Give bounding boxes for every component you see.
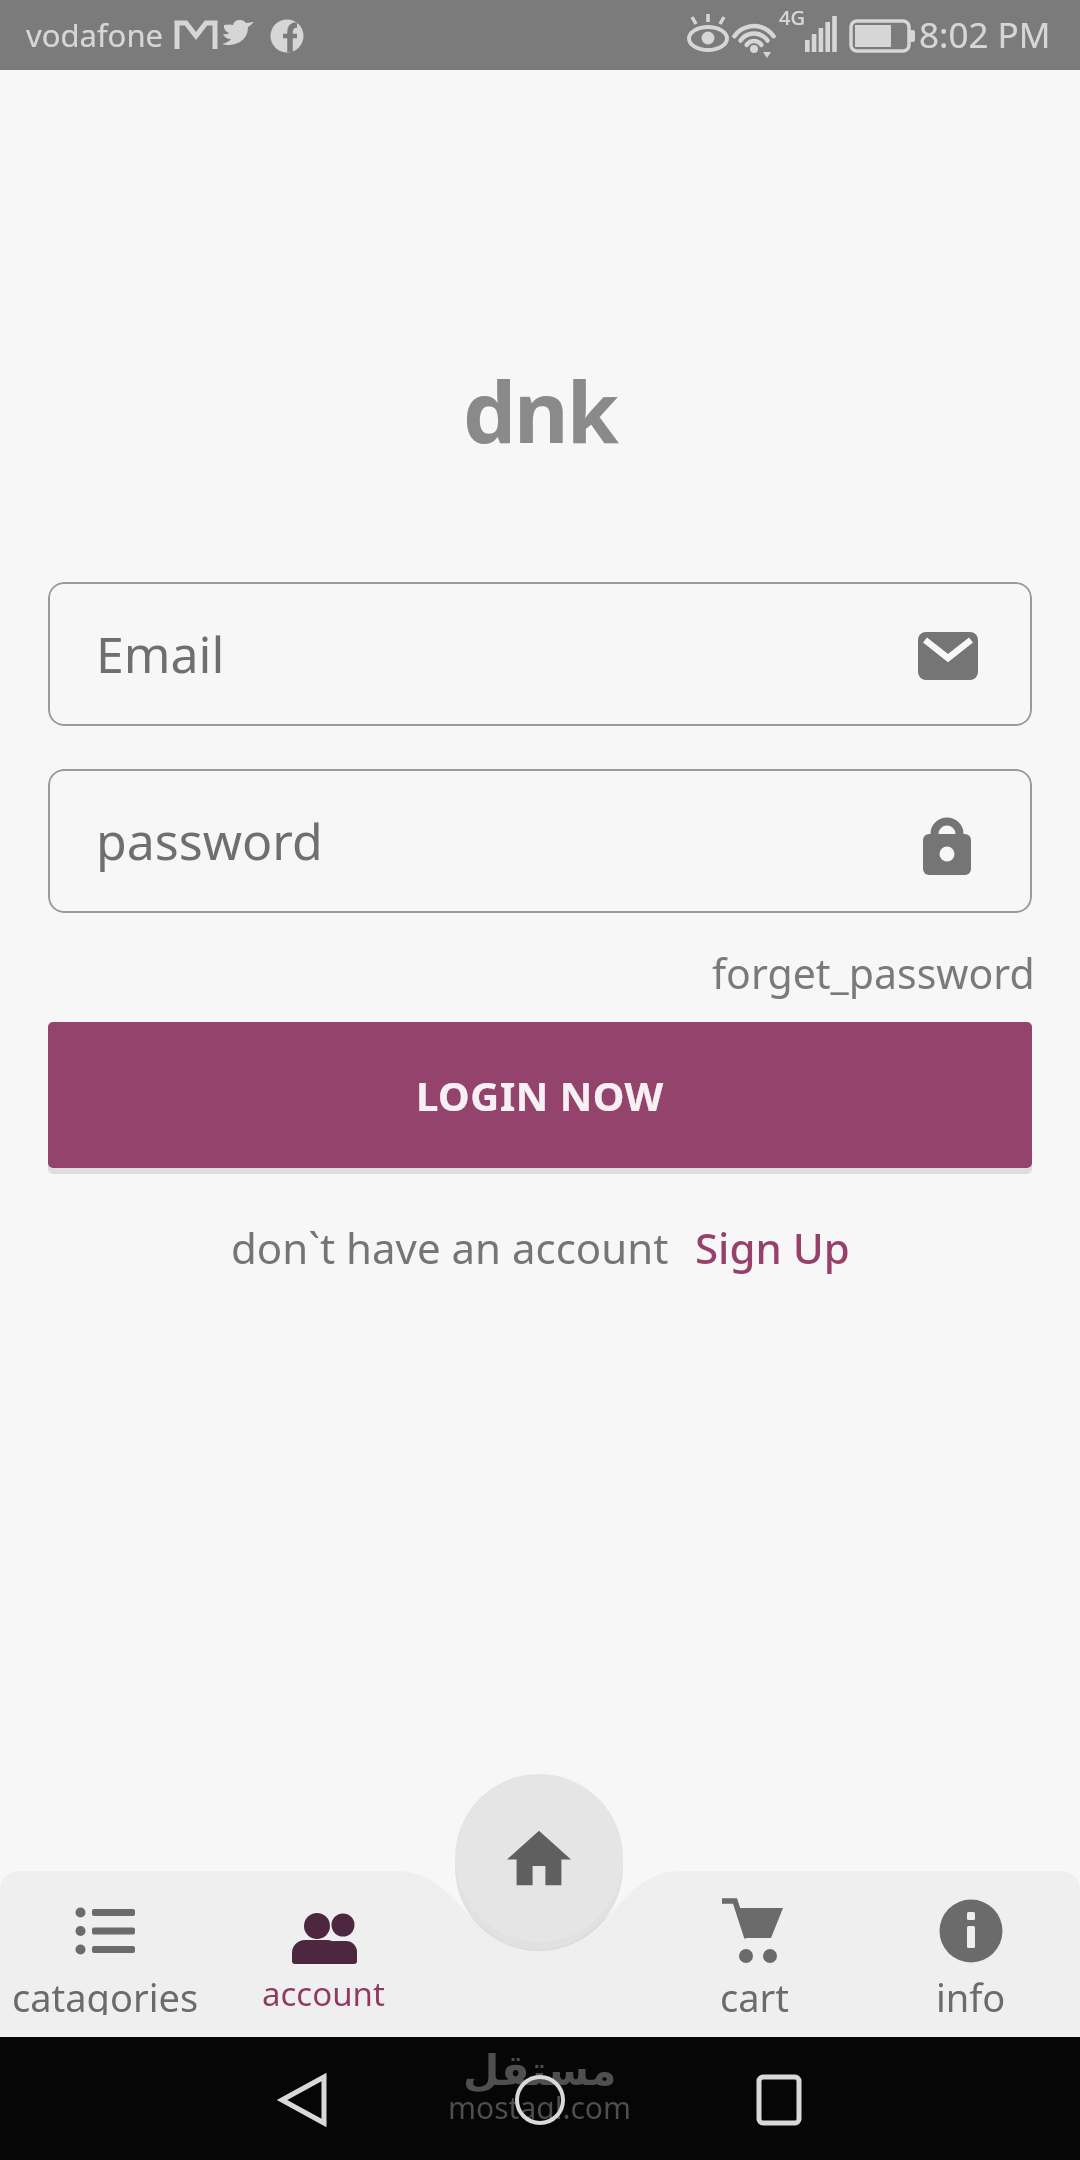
button[interactable]: LOGIN NOW xyxy=(48,1022,1032,1168)
staticText: don`t have an account xyxy=(231,1219,669,1276)
staticText: vodafone xyxy=(26,14,164,56)
staticText: info xyxy=(936,1971,1006,2015)
button[interactable] xyxy=(890,1885,1060,2020)
staticText: account xyxy=(262,1971,385,2015)
button[interactable]: Email xyxy=(48,582,1032,726)
button[interactable] xyxy=(454,1773,624,1943)
staticText: password xyxy=(96,807,323,875)
button[interactable]: password xyxy=(48,769,1032,913)
staticText: dnk xyxy=(463,353,617,467)
staticText: Sign Up xyxy=(695,1219,850,1276)
staticText: LOGIN NOW xyxy=(416,1068,664,1122)
staticText: مستقل xyxy=(463,2046,617,2095)
button[interactable]: Sign Up xyxy=(695,1219,850,1276)
staticText: mostaql.com xyxy=(448,2087,632,2121)
button[interactable] xyxy=(15,1885,205,2020)
staticText: forget_password xyxy=(712,945,1035,1001)
staticText: catagories xyxy=(12,1971,199,2015)
staticText: 4G xyxy=(779,4,805,31)
staticText: cart xyxy=(720,1971,789,2015)
button[interactable] xyxy=(736,2057,822,2143)
button[interactable] xyxy=(262,2057,348,2143)
button[interactable] xyxy=(670,1885,840,2020)
button[interactable] xyxy=(240,1885,410,2020)
staticText: Email xyxy=(96,620,225,688)
button[interactable] xyxy=(497,2057,583,2143)
staticText: 8:02 PM xyxy=(919,11,1051,59)
button[interactable]: forget_password xyxy=(712,945,1035,1001)
